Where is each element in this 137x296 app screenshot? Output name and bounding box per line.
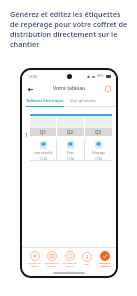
button[interactable]: AIDE bbox=[78, 252, 95, 266]
button[interactable]: AJOUTER UN CIRCUIT bbox=[26, 251, 43, 268]
staticText: CHANGER UN CIRCUIT bbox=[61, 262, 78, 268]
other: TERMINER ET IMPRIMER bbox=[100, 251, 110, 261]
staticText: TERMINER ET IMPRIMER bbox=[96, 262, 113, 268]
button[interactable]: Q3 bbox=[85, 116, 112, 136]
other: AJOUTER UNE RANGÉE bbox=[47, 251, 57, 261]
button[interactable]: Help bbox=[104, 85, 112, 93]
staticText: Générez et éditez les étiquettes de repé… bbox=[10, 9, 131, 49]
staticText: C16A bbox=[40, 157, 47, 160]
staticText: AJOUTER UNE RANGÉE bbox=[43, 262, 60, 268]
staticText: Votre tableau bbox=[53, 85, 86, 92]
button[interactable]: TERMINER ET IMPRIMER bbox=[96, 251, 113, 268]
staticText: Q1 bbox=[40, 129, 47, 135]
other: AIDE bbox=[82, 252, 92, 262]
staticText: Vue générale bbox=[70, 98, 96, 104]
staticText: AJOUTER UN CIRCUIT bbox=[26, 262, 43, 268]
staticText: Tableau électrique bbox=[26, 98, 64, 104]
button[interactable]: Q2 bbox=[57, 116, 84, 136]
staticText: AIDE bbox=[84, 263, 89, 266]
button[interactable]: AJOUTER UNE RANGÉE bbox=[43, 251, 60, 268]
staticText: 1 bbox=[25, 132, 28, 139]
button[interactable]: Q1 bbox=[30, 116, 56, 136]
staticText: C16A bbox=[67, 157, 74, 160]
staticText: 98% bbox=[97, 74, 104, 78]
button[interactable]: Lave vaisselle bbox=[30, 138, 56, 160]
button[interactable]: CHANGER UN CIRCUIT bbox=[61, 251, 78, 268]
button[interactable]: Back bbox=[22, 82, 116, 95]
button[interactable]: Back bbox=[26, 85, 34, 93]
button[interactable]: Tableau électrique bbox=[26, 98, 64, 104]
staticText: Lave vaisselle bbox=[33, 151, 53, 155]
staticText: 13:08 bbox=[28, 74, 37, 79]
button[interactable]: Éclairage bbox=[85, 138, 112, 160]
staticText: Prise bbox=[67, 151, 74, 155]
staticText: Q2 bbox=[67, 129, 74, 135]
staticText: Éclairage bbox=[92, 151, 105, 155]
other: AJOUTER UN CIRCUIT bbox=[30, 251, 40, 261]
staticText: Q3 bbox=[95, 129, 102, 135]
button[interactable]: Vue générale bbox=[70, 98, 96, 104]
staticText: C16A bbox=[95, 157, 102, 160]
button[interactable]: Prise bbox=[57, 138, 84, 160]
other: CHANGER UN CIRCUIT bbox=[65, 251, 75, 261]
